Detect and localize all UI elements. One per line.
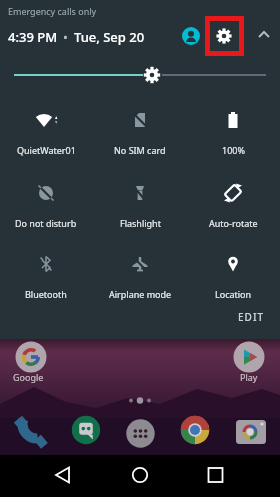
staticText: Google	[13, 371, 44, 383]
button[interactable]	[182, 27, 200, 45]
button[interactable]	[187, 455, 280, 497]
staticText: Location	[215, 288, 252, 300]
button[interactable]: No SIM card	[98, 100, 182, 156]
button[interactable]	[233, 341, 265, 373]
button[interactable]: Flashlight	[98, 173, 182, 229]
button[interactable]: Do not disturb	[4, 173, 88, 229]
button[interactable]	[213, 25, 235, 47]
button[interactable]	[71, 415, 101, 445]
button[interactable]	[0, 60, 280, 90]
button[interactable]: EDIT	[230, 305, 272, 329]
staticText: Airplane mode	[109, 288, 172, 300]
staticText: No SIM card	[114, 144, 166, 156]
button[interactable]	[94, 455, 187, 497]
staticText: Emergency calls only	[8, 5, 97, 17]
staticText: 100%	[222, 144, 245, 156]
staticText: •	[63, 28, 68, 46]
button[interactable]	[15, 341, 47, 373]
button[interactable]: Location	[191, 244, 275, 300]
staticText: QuietWater01	[17, 144, 76, 156]
button[interactable]: Auto-rotate	[191, 173, 275, 229]
staticText: Play	[240, 371, 258, 383]
button[interactable]	[126, 419, 155, 448]
button[interactable]: 100%	[191, 100, 275, 156]
staticText: EDIT	[238, 310, 265, 324]
staticText: Do not disturb	[15, 217, 77, 229]
button[interactable]: Bluetooth	[4, 244, 88, 300]
staticText: Bluetooth	[25, 288, 67, 300]
button[interactable]: QuietWater01	[4, 100, 88, 156]
button[interactable]: Airplane mode	[98, 244, 182, 300]
staticText: 4:39 PM	[8, 28, 58, 46]
button[interactable]	[0, 455, 94, 497]
button[interactable]	[235, 417, 267, 445]
button[interactable]	[14, 413, 48, 447]
staticText: Flashlight	[120, 217, 161, 229]
staticText: Tue, Sep 20	[74, 28, 145, 46]
staticText: Auto-rotate	[209, 217, 258, 229]
button[interactable]	[180, 415, 210, 445]
